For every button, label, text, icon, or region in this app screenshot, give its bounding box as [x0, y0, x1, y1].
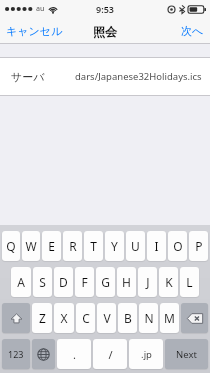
- button[interactable]: キャンセル: [0, 20, 69, 42]
- staticText: U: [131, 238, 140, 254]
- button[interactable]: サーバ: [0, 57, 210, 96]
- staticText: M: [164, 310, 175, 326]
- staticText: dars/Japanese32Holidays.ics: [75, 70, 202, 83]
- button[interactable]: S: [33, 267, 52, 297]
- button[interactable]: 次へ: [175, 20, 210, 42]
- staticText: B: [124, 310, 132, 326]
- button[interactable]: Backspace: [181, 303, 208, 333]
- button[interactable]: 123: [2, 339, 30, 369]
- staticText: /: [108, 347, 113, 362]
- button[interactable]: C: [76, 303, 95, 333]
- button[interactable]: V: [97, 303, 116, 333]
- staticText: S: [39, 274, 46, 290]
- staticText: D: [59, 274, 68, 290]
- staticText: Next: [176, 348, 197, 361]
- button[interactable]: Next: [165, 339, 208, 369]
- staticText: K: [165, 274, 173, 290]
- staticText: キャンセル: [6, 24, 63, 38]
- button[interactable]: T: [84, 231, 103, 261]
- button[interactable]: M: [160, 303, 179, 333]
- staticText: V: [103, 310, 111, 326]
- staticText: サーバ: [11, 70, 45, 84]
- staticText: G: [101, 274, 110, 290]
- staticText: .: [73, 347, 76, 362]
- staticText: E: [48, 238, 55, 254]
- staticText: 123: [8, 348, 24, 360]
- button[interactable]: N: [139, 303, 158, 333]
- staticText: H: [122, 274, 131, 290]
- button[interactable]: A: [11, 267, 31, 297]
- staticText: 9:53: [96, 3, 114, 15]
- button[interactable]: G: [96, 267, 115, 297]
- button[interactable]: /: [93, 339, 127, 369]
- button[interactable]: K: [159, 267, 178, 297]
- button[interactable]: X: [54, 303, 74, 333]
- staticText: N: [144, 310, 154, 326]
- button[interactable]: P: [189, 231, 208, 261]
- staticText: 次へ: [181, 24, 204, 38]
- button[interactable]: O: [168, 231, 187, 261]
- staticText: X: [60, 310, 68, 326]
- staticText: 照会: [93, 24, 117, 39]
- staticText: .jp: [141, 348, 152, 361]
- button[interactable]: Change keyboard: [32, 339, 55, 369]
- button[interactable]: U: [126, 231, 145, 261]
- staticText: W: [25, 238, 37, 254]
- button[interactable]: Shift: [2, 303, 30, 333]
- button[interactable]: W: [22, 231, 40, 261]
- button[interactable]: D: [54, 267, 73, 297]
- staticText: Y: [111, 238, 118, 254]
- staticText: Z: [39, 310, 46, 326]
- button[interactable]: R: [63, 231, 82, 261]
- staticText: L: [186, 274, 193, 290]
- button[interactable]: .: [57, 339, 91, 369]
- button[interactable]: Z: [32, 303, 52, 333]
- staticText: O: [173, 238, 183, 254]
- button[interactable]: H: [117, 267, 136, 297]
- button[interactable]: J: [138, 267, 157, 297]
- button[interactable]: L: [180, 267, 199, 297]
- staticText: au: [36, 4, 45, 14]
- button[interactable]: I: [147, 231, 166, 261]
- button[interactable]: E: [42, 231, 61, 261]
- button[interactable]: .jp: [129, 339, 163, 369]
- staticText: I: [154, 238, 159, 254]
- staticText: C: [82, 310, 90, 326]
- staticText: F: [81, 274, 88, 290]
- button[interactable]: Q: [2, 231, 20, 261]
- staticText: Q: [6, 238, 16, 254]
- staticText: A: [17, 274, 25, 290]
- staticText: J: [146, 274, 150, 290]
- button[interactable]: Y: [105, 231, 124, 261]
- staticText: R: [69, 238, 77, 254]
- button[interactable]: B: [118, 303, 137, 333]
- button[interactable]: F: [75, 267, 94, 297]
- staticText: T: [90, 238, 97, 254]
- staticText: P: [195, 238, 203, 254]
